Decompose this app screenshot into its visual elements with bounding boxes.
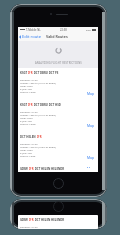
button[interactable]: KSGT (18, 100, 98, 132)
staticText: Edit route (22, 34, 42, 40)
staticText: Duration: 01:25 (20, 225, 38, 228)
staticText: Source: APOR (20, 90, 36, 93)
staticText: Length: 138NM (101% of direct) (20, 81, 56, 84)
staticText: IFR (29, 218, 34, 222)
button[interactable]: Map (85, 164, 98, 172)
button[interactable]: Map (85, 89, 98, 100)
staticText: IFR (37, 135, 42, 139)
staticText: Valid Routes (46, 34, 68, 39)
button[interactable]: Map (85, 121, 98, 132)
staticText: GIRW (20, 167, 29, 171)
staticText: KSGT (20, 103, 28, 107)
staticText: KSGT (20, 71, 28, 75)
staticText: Level: F040 (20, 84, 33, 87)
staticText: Z-JOIN IFR (20, 151, 32, 154)
staticText: Map (87, 155, 95, 160)
staticText: 84% (86, 28, 91, 31)
staticText: Duration: 01:25 (20, 110, 38, 113)
button[interactable]: GIRW (18, 164, 98, 172)
staticText: Z-JOIN IFR (20, 119, 32, 122)
staticText: DCT HELEN HELENDR (34, 218, 65, 222)
staticText: Z-JOIN IFR (20, 87, 32, 90)
staticText: Level: F030 (20, 148, 33, 151)
staticText: IFR (29, 167, 34, 171)
staticText: Map (87, 91, 95, 96)
staticText: ANALYZING FLIGHT RESTRICTIONS (35, 61, 82, 65)
staticText: Source: APOE (20, 154, 36, 157)
staticText: DCT HELEN HELENDR (34, 167, 65, 171)
staticText: DCT DBRU DCT HSD (33, 103, 61, 107)
staticText: 22:38 (60, 28, 67, 32)
staticText: Duration: 01:25 (20, 78, 38, 81)
staticText: IFR (28, 71, 33, 75)
staticText: IFR (28, 103, 33, 107)
staticText: Map (87, 166, 95, 168)
staticText: T-Mobile NL (26, 28, 41, 32)
staticText: DCT DBRU DCT PS (33, 71, 59, 75)
staticText: Level: F040 (20, 116, 33, 119)
staticText: Length: 140NM (103% of direct) (20, 145, 56, 148)
button[interactable]: Map (85, 153, 98, 164)
button[interactable]: DCT HELEN (18, 132, 98, 164)
staticText: DCT HELEN (20, 135, 37, 139)
staticText: Source: APOR (20, 122, 36, 125)
button[interactable]: KSGT (18, 68, 98, 100)
button[interactable]: Edit route (18, 33, 44, 41)
staticText: GIRW (20, 218, 29, 222)
staticText: Length: 138NM (101% of direct) (20, 113, 56, 116)
staticText: Map (87, 123, 95, 128)
staticText: Duration: 01:25 (20, 142, 38, 145)
